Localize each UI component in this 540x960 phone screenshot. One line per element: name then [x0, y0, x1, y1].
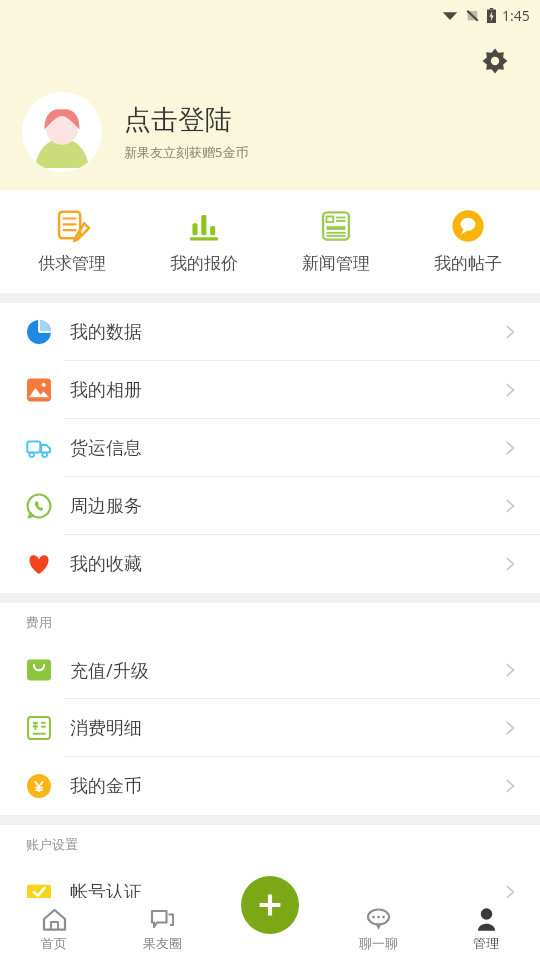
staticText: 货运信息	[70, 437, 142, 460]
button[interactable]: 充值/升级	[0, 641, 540, 699]
staticText: 供求管理	[38, 253, 106, 274]
staticText: 账户设置	[26, 836, 78, 852]
button[interactable]: 我的相册	[0, 361, 540, 419]
button[interactable]: 供求管理	[12, 190, 132, 293]
button[interactable]: 我的帖子	[408, 190, 528, 293]
staticText: 我的数据	[70, 321, 142, 344]
button[interactable]: 新闻管理	[276, 190, 396, 293]
button[interactable]: 帐号认证	[0, 863, 540, 921]
staticText: 我的金币	[70, 775, 142, 798]
staticText: 充值/升级	[70, 658, 149, 683]
staticText: 果友圈	[143, 935, 182, 951]
button[interactable]: 货运信息	[0, 419, 540, 477]
staticText: 我的报价	[170, 253, 238, 274]
staticText: 我的相册	[70, 379, 142, 402]
staticText: 新闻管理	[302, 253, 370, 274]
staticText: 点击登陆	[124, 103, 232, 137]
staticText: 管理	[473, 935, 499, 951]
staticText: 周边服务	[70, 495, 142, 518]
button[interactable]: 我的数据	[0, 303, 540, 361]
staticText: 费用	[26, 614, 52, 630]
staticText: 首页	[41, 935, 67, 951]
staticText: 1:45	[502, 6, 530, 25]
button[interactable]: 周边服务	[0, 477, 540, 535]
staticText: 聊一聊	[359, 935, 398, 951]
staticText: 新果友立刻获赠5金币	[124, 143, 249, 161]
button[interactable]: Settings	[474, 40, 516, 82]
button[interactable]: 果友圈	[108, 898, 216, 960]
button[interactable]: 聊一聊	[324, 898, 432, 960]
button[interactable]: 消费明细	[0, 699, 540, 757]
staticText: 帐号认证	[70, 881, 142, 904]
button[interactable]: 管理	[432, 898, 540, 960]
button[interactable]: 我的报价	[144, 190, 264, 293]
button[interactable]: Add	[241, 876, 299, 934]
staticText: 消费明细	[70, 717, 142, 740]
button[interactable]: 我的金币	[0, 757, 540, 815]
staticText: 我的帖子	[434, 253, 502, 274]
staticText: 我的收藏	[70, 553, 142, 576]
button[interactable]: Avatar	[22, 92, 102, 172]
button[interactable]: 我的收藏	[0, 535, 540, 593]
button[interactable]: 首页	[0, 898, 108, 960]
